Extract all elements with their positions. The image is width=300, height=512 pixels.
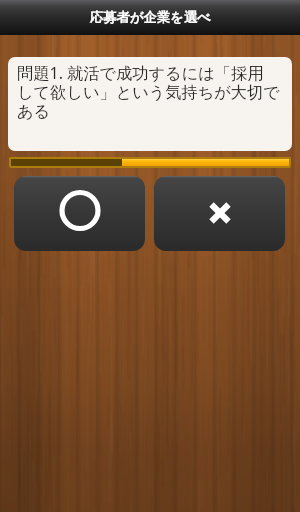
button[interactable]: Incorrect — [154, 176, 285, 251]
button[interactable]: Correct — [14, 176, 145, 251]
staticText: 問題1. 就活で成功するには「採用 して欲しい」という気持ちが大切で ある — [17, 62, 280, 122]
staticText: 応募者が企業を選べ — [90, 9, 211, 26]
